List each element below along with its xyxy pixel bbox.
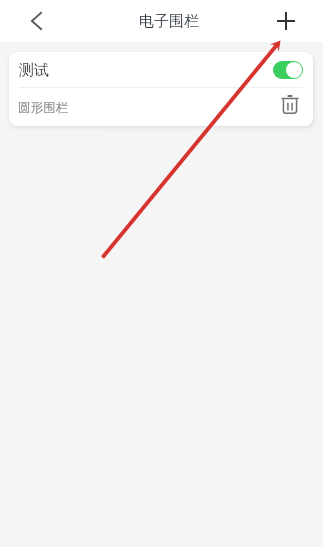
staticText: 圆形围栏 [18,100,69,116]
button[interactable]: 圆形围栏 [9,88,313,126]
button[interactable]: Back [19,4,53,38]
button[interactable]: Add [269,4,303,38]
staticText: 电子围栏 [139,12,199,31]
button[interactable]: Enable geofence [273,61,303,79]
staticText: 测试 [19,61,49,80]
button[interactable]: 测试 [9,52,313,87]
button[interactable]: Delete [276,90,304,118]
